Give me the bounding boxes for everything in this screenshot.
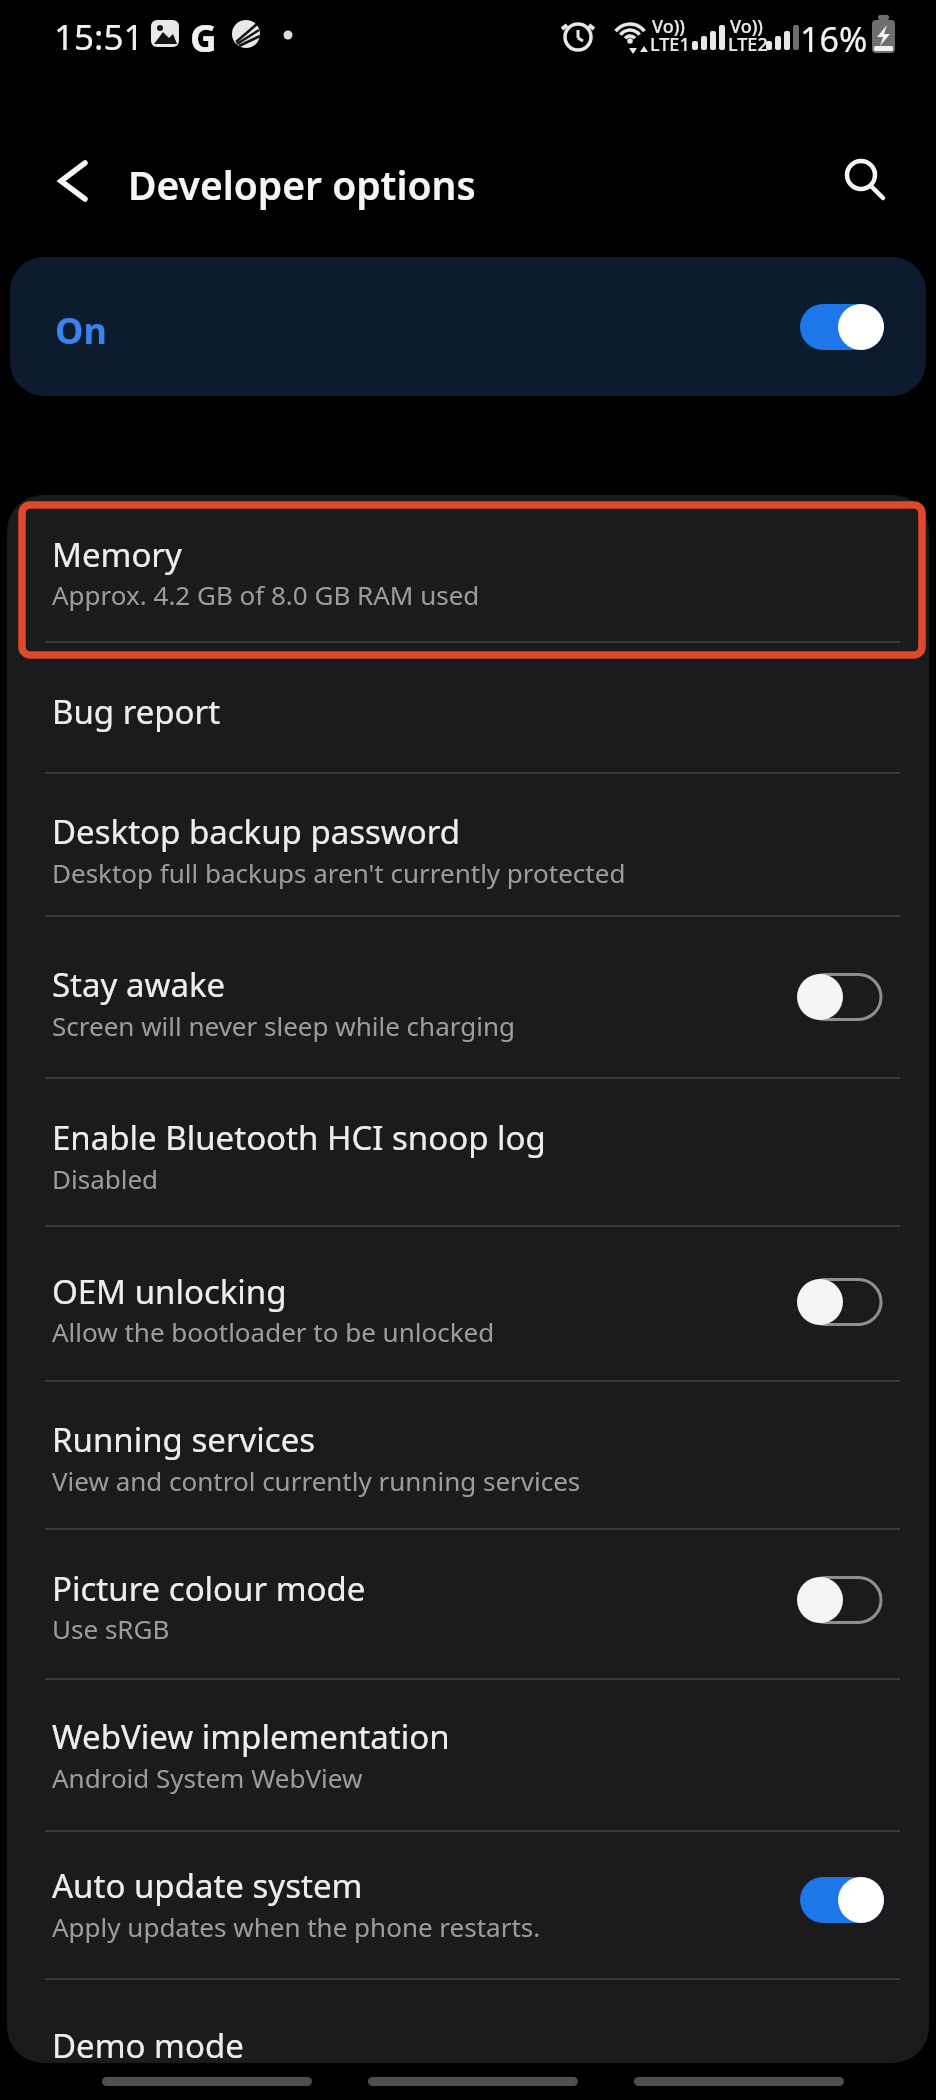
staticText: Picture colour mode [52,1566,366,1611]
staticText: Vo)) [730,14,763,39]
staticText: Vo)) [652,14,685,39]
staticText: Auto update system [52,1863,363,1908]
button[interactable]: Memory [7,505,929,641]
staticText: LTE2 [728,32,768,57]
staticText: Screen will never sleep while charging [52,1008,515,1043]
button[interactable]: WebView implementation [7,1678,929,1830]
staticText: G [190,12,217,62]
button[interactable] [835,150,897,212]
button[interactable]: Bug report [7,641,929,772]
staticText: Desktop full backups aren't currently pr… [52,855,626,890]
button[interactable]: Running services [7,1380,929,1528]
staticText: 16% [800,16,868,62]
staticText: On [55,306,107,355]
button[interactable]: Auto update system [7,1830,929,1978]
staticText: Stay awake [52,962,226,1007]
staticText: Allow the bootloader to be unlocked [52,1314,495,1349]
button[interactable]: Desktop backup password [7,772,929,915]
button[interactable]: Enable Bluetooth HCI snoop log [7,1077,929,1225]
button[interactable]: Stay awake [7,915,929,1077]
staticText: Use sRGB [52,1611,170,1646]
staticText: View and control currently running servi… [52,1463,581,1498]
button[interactable]: Picture colour mode [7,1528,929,1678]
staticText: WebView implementation [52,1714,450,1759]
staticText: LTE1 [650,32,690,57]
staticText: Bug report [52,689,221,734]
button[interactable]: OEM unlocking [7,1225,929,1380]
staticText: Desktop backup password [52,809,461,854]
button[interactable] [40,155,96,211]
staticText: 15:51 [54,13,144,61]
staticText: Demo mode [52,2023,244,2063]
staticText: Approx. 4.2 GB of 8.0 GB RAM used [52,577,480,612]
button[interactable]: Demo mode [7,1978,929,2063]
staticText: Apply updates when the phone restarts. [52,1909,541,1944]
staticText: OEM unlocking [52,1269,287,1314]
staticText: Android System WebView [52,1760,363,1795]
staticText: Running services [52,1417,316,1462]
staticText: Enable Bluetooth HCI snoop log [52,1115,546,1160]
staticText: Developer options [128,158,476,211]
staticText: Memory [52,532,182,577]
button[interactable]: On [10,257,926,396]
staticText: Disabled [52,1161,159,1196]
